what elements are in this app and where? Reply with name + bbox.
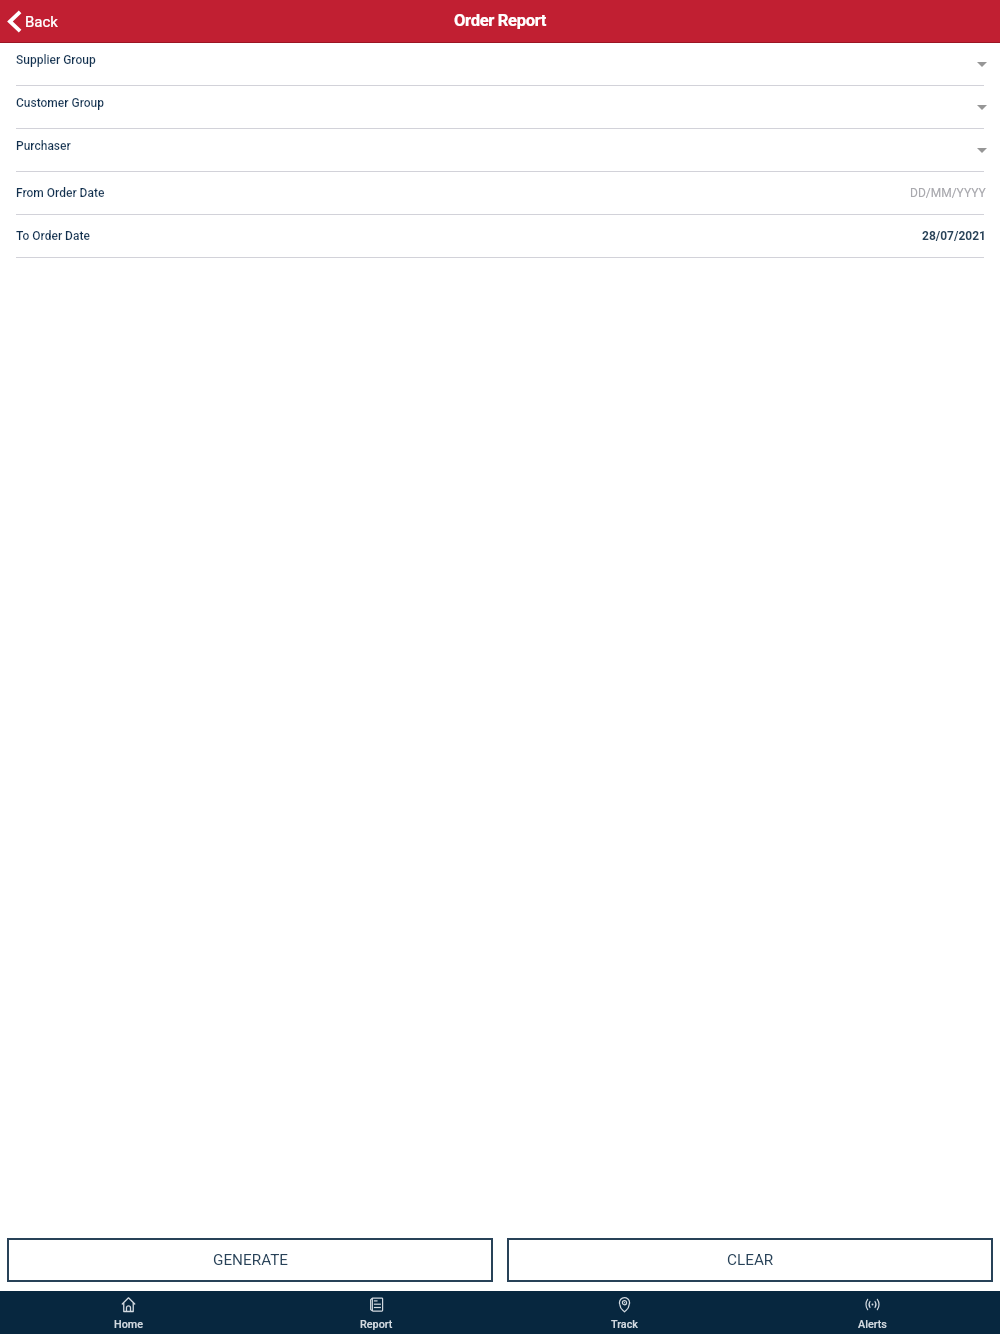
staticText: 28/07/2021	[922, 229, 986, 243]
staticText: Customer Group	[16, 96, 104, 110]
staticText: Home	[114, 1318, 143, 1331]
button[interactable]: To Order Date	[0, 215, 1000, 258]
button[interactable]: GENERATE	[7, 1238, 493, 1282]
button[interactable]: Supplier Group	[0, 43, 1000, 86]
button[interactable]: CLEAR	[507, 1238, 993, 1282]
staticText: Supplier Group	[16, 53, 96, 67]
button[interactable]: Back	[0, 6, 70, 37]
staticText: From Order Date	[16, 186, 105, 200]
button[interactable]: Customer Group	[0, 86, 1000, 129]
staticText: GENERATE	[213, 1251, 288, 1269]
button[interactable]: Track	[500, 1291, 748, 1331]
staticText: DD/MM/YYYY	[910, 186, 986, 200]
staticText: Back	[25, 13, 58, 31]
staticText: Alerts	[858, 1318, 887, 1331]
staticText: Order Report	[454, 11, 547, 30]
staticText: To Order Date	[16, 229, 90, 243]
button[interactable]: Report	[252, 1291, 500, 1331]
other: Open Customer Group list	[977, 105, 987, 110]
button[interactable]: Purchaser	[0, 129, 1000, 172]
other: Open Purchaser list	[977, 148, 987, 153]
button[interactable]: Home	[4, 1291, 252, 1331]
staticText: Purchaser	[16, 139, 71, 153]
staticText: Report	[360, 1318, 393, 1331]
button[interactable]: From Order Date	[0, 172, 1000, 215]
button[interactable]: Alerts	[748, 1291, 996, 1331]
staticText: Track	[611, 1318, 638, 1331]
other: Open Supplier Group list	[977, 62, 987, 67]
staticText: CLEAR	[727, 1251, 774, 1269]
